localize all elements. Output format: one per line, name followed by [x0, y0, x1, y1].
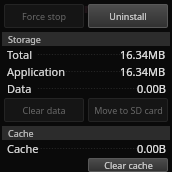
staticText: 16.34MB	[120, 64, 166, 79]
staticText: Clear data	[22, 104, 66, 116]
staticText: Storage	[8, 33, 41, 45]
staticText: LIFE	[97, 0, 135, 13]
button[interactable]: Uninstall	[88, 4, 168, 28]
button[interactable]: Application	[0, 63, 172, 80]
staticText: DROID	[37, 0, 97, 13]
button[interactable]: Move to SD card	[88, 98, 168, 122]
staticText: Application	[7, 64, 65, 79]
staticText: Move to SD card	[94, 104, 163, 116]
button[interactable]: Force stop	[4, 4, 84, 28]
staticText: Cache	[7, 141, 39, 156]
staticText: Data	[7, 81, 32, 96]
staticText: 0.00B	[137, 81, 166, 96]
staticText: Cache	[8, 127, 34, 139]
staticText: 16.34MB	[120, 47, 166, 62]
staticText: Clear cache	[104, 159, 153, 171]
button[interactable]: Total	[0, 46, 172, 63]
staticText: Uninstall	[109, 10, 147, 22]
button[interactable]: Clear cache	[88, 158, 168, 172]
button[interactable]: Cache	[0, 140, 172, 157]
button[interactable]: Data	[0, 80, 172, 97]
button[interactable]: Clear data	[4, 98, 84, 122]
staticText: Force stop	[22, 10, 66, 22]
staticText: 0.00B	[137, 141, 166, 156]
staticText: Total	[7, 47, 32, 62]
